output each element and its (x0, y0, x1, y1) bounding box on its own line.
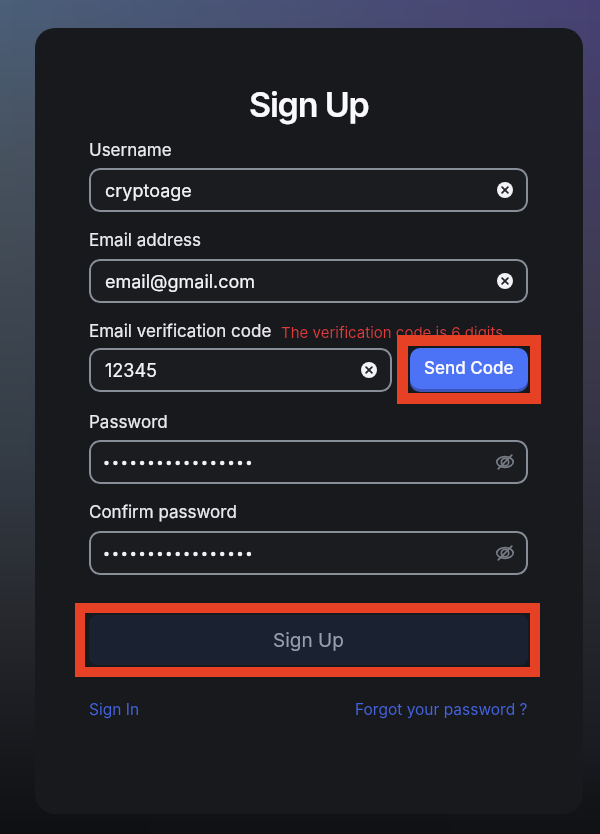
button[interactable]: Send Code (410, 348, 528, 389)
button[interactable]: 12345 (89, 348, 392, 392)
button[interactable]: email@gmail.com (89, 259, 528, 303)
button[interactable]: Sign Up (89, 615, 528, 665)
staticText: Forgot your password ? (355, 700, 528, 719)
button[interactable]: cryptoage (89, 168, 528, 212)
staticText: Email address (89, 230, 202, 251)
button[interactable] (89, 531, 528, 575)
button[interactable] (89, 440, 528, 484)
button[interactable]: Forgot your password ? (355, 700, 528, 719)
staticText: email@gmail.com (105, 271, 256, 293)
staticText: Password (89, 412, 168, 433)
staticText: Email verification code (89, 321, 272, 342)
staticText: 12345 (105, 360, 157, 382)
staticText: The verification code is 6 digits (281, 323, 504, 341)
staticText: Username (89, 140, 172, 161)
button[interactable]: Sign In (89, 700, 140, 719)
staticText: Sign Up (273, 629, 344, 652)
staticText: Send Code (424, 358, 514, 379)
staticText: Sign In (89, 700, 140, 719)
staticText: cryptoage (105, 180, 192, 202)
staticText: Sign Up (249, 84, 369, 125)
staticText: Confirm password (89, 502, 237, 523)
